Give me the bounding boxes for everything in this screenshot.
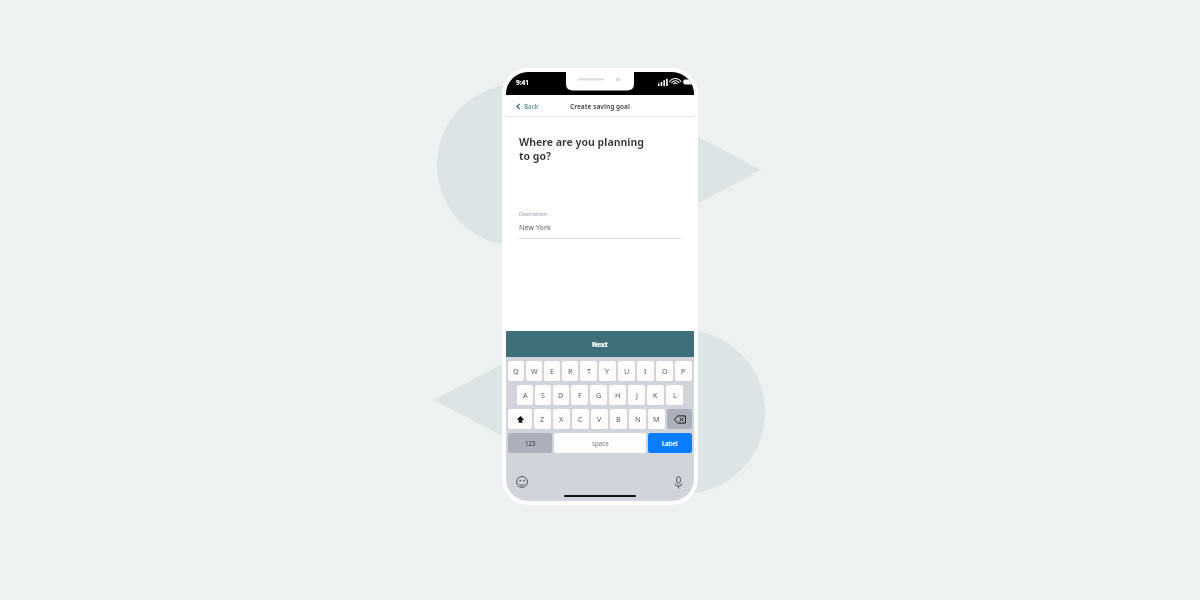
button[interactable]: L	[666, 385, 683, 405]
button[interactable]: Q	[508, 361, 524, 381]
staticText: Next	[592, 340, 608, 349]
staticText: N	[635, 414, 641, 424]
button[interactable]: W	[526, 361, 542, 381]
staticText: Label	[662, 439, 678, 447]
button[interactable]: N	[629, 409, 646, 429]
button[interactable]: Voice input	[674, 476, 683, 489]
button[interactable]: P	[675, 361, 692, 381]
staticText: W	[531, 366, 538, 376]
button[interactable]: E	[544, 361, 560, 381]
staticText: I	[644, 366, 647, 376]
staticText: P	[681, 366, 686, 376]
button[interactable]: 123	[508, 433, 552, 453]
staticText: O	[662, 366, 668, 376]
button[interactable]: X	[553, 409, 570, 429]
button[interactable]: Next	[506, 331, 694, 357]
staticText: 9:41	[516, 78, 529, 87]
button[interactable]: Y	[599, 361, 616, 381]
staticText: F	[578, 390, 582, 400]
staticText: K	[653, 390, 658, 400]
button[interactable]: Z	[534, 409, 551, 429]
button[interactable]: Back	[514, 99, 541, 114]
button[interactable]: V	[591, 409, 608, 429]
button[interactable]: R	[562, 361, 578, 381]
button[interactable]: G	[590, 385, 607, 405]
button[interactable]: Shift	[508, 409, 532, 429]
staticText: Z	[540, 414, 545, 424]
button[interactable]: D	[553, 385, 569, 405]
staticText: U	[624, 366, 630, 376]
button[interactable]: Emoji	[516, 476, 528, 488]
staticText: M	[653, 414, 660, 424]
button[interactable]: T	[580, 361, 597, 381]
button[interactable]: U	[618, 361, 635, 381]
button[interactable]: C	[572, 409, 589, 429]
staticText: E	[550, 366, 554, 376]
button[interactable]: S	[535, 385, 551, 405]
staticText: X	[559, 414, 564, 424]
staticText: space	[592, 439, 609, 447]
staticText: A	[523, 390, 528, 400]
button[interactable]: B	[610, 409, 627, 429]
staticText: Destination	[519, 210, 548, 217]
button[interactable]: Label	[648, 433, 692, 453]
button[interactable]: H	[609, 385, 626, 405]
staticText: New York	[519, 222, 551, 232]
button[interactable]: J	[628, 385, 645, 405]
staticText: Y	[605, 366, 610, 376]
staticText: 123	[525, 439, 536, 447]
staticText: G	[596, 390, 602, 400]
staticText: T	[587, 366, 591, 376]
staticText: D	[558, 390, 564, 400]
staticText: B	[616, 414, 621, 424]
staticText: J	[636, 390, 638, 400]
button[interactable]: Backspace	[667, 409, 692, 429]
staticText: Q	[513, 366, 519, 376]
button[interactable]: F	[571, 385, 588, 405]
button[interactable]: I	[637, 361, 654, 381]
staticText: Back	[524, 102, 539, 111]
button[interactable]: A	[517, 385, 533, 405]
staticText: V	[597, 414, 602, 424]
staticText: Where are you planning to go?	[519, 135, 644, 163]
staticText: L	[673, 390, 677, 400]
staticText: H	[615, 390, 621, 400]
button[interactable]: space	[554, 433, 646, 453]
staticText: S	[541, 390, 545, 400]
staticText: Create saving goal	[570, 102, 630, 111]
button[interactable]: K	[647, 385, 664, 405]
button[interactable]: O	[656, 361, 673, 381]
button[interactable]: M	[648, 409, 665, 429]
staticText: C	[578, 414, 583, 424]
staticText: R	[568, 366, 573, 376]
